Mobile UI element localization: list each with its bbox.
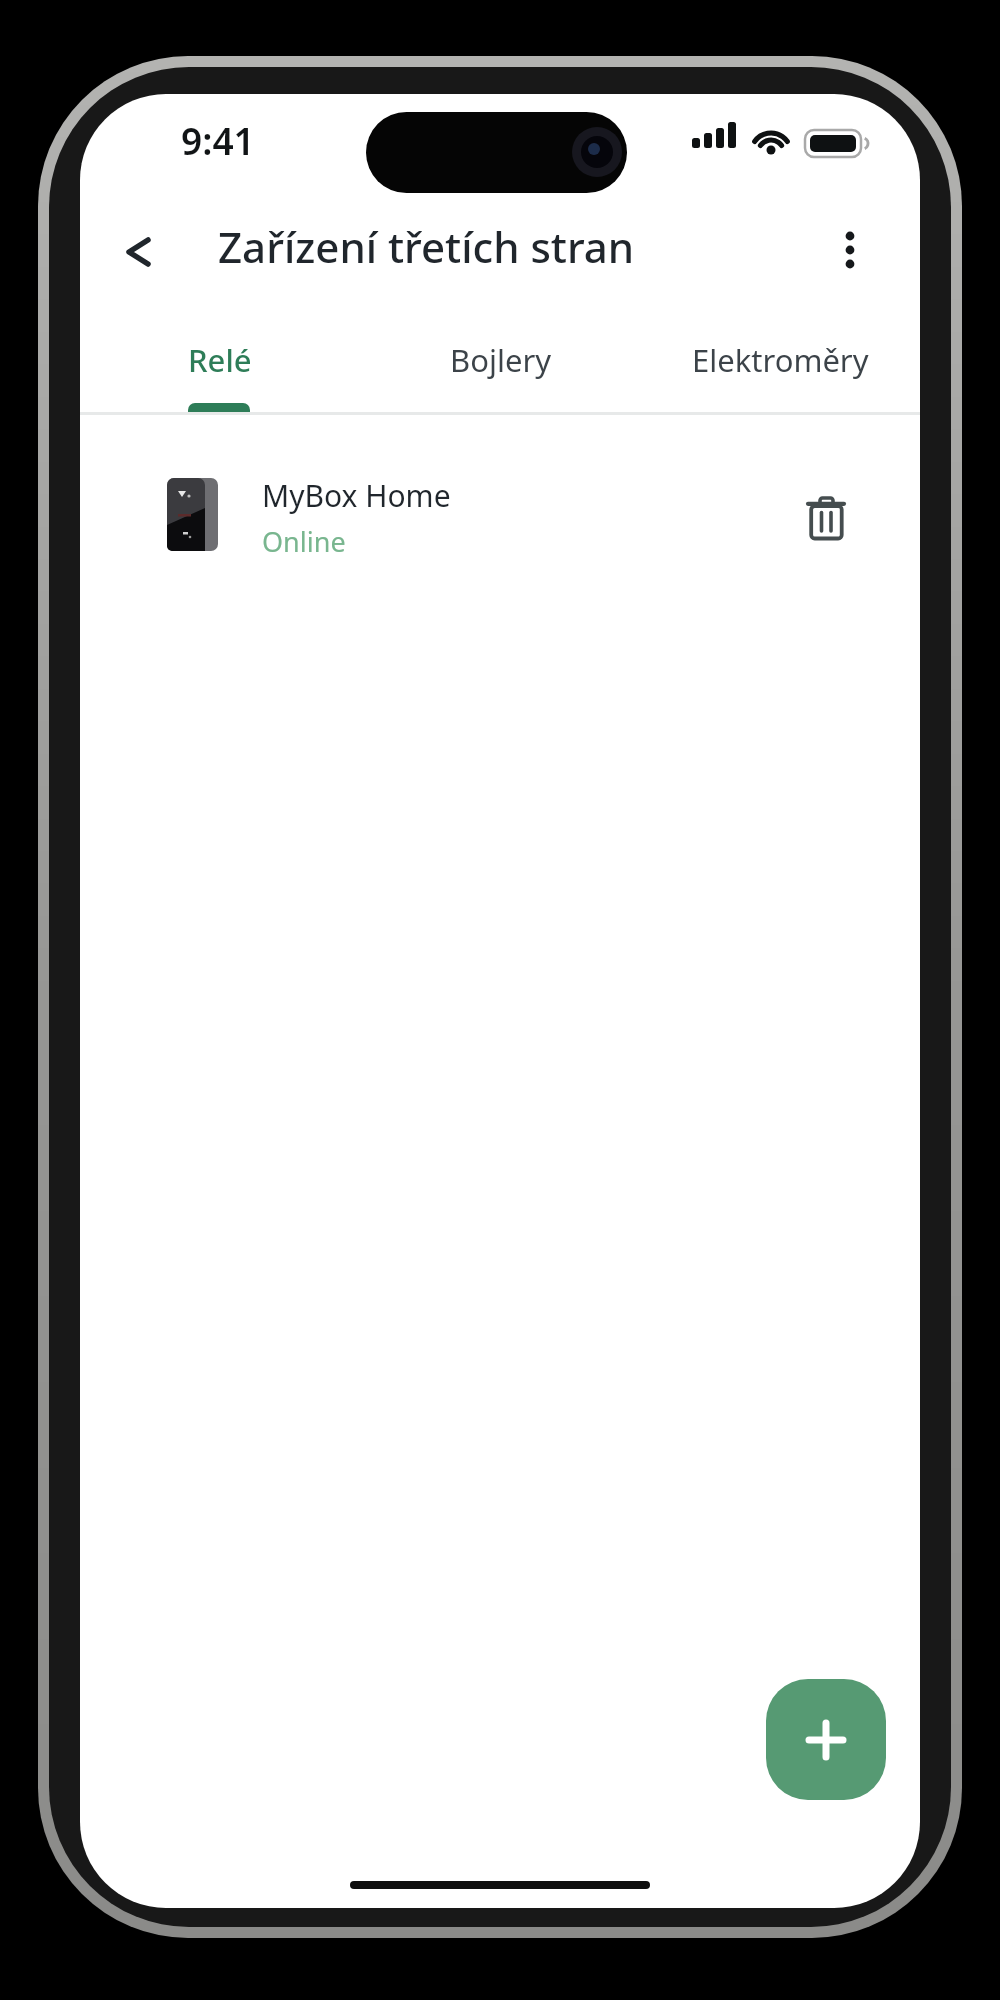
button[interactable]: Elektroměry [640, 327, 920, 393]
staticText: 9:41 [181, 115, 255, 165]
button[interactable] [110, 224, 166, 280]
button[interactable] [794, 486, 858, 550]
staticText: Zařízení třetích stran [218, 218, 635, 275]
button[interactable]: Relé [80, 327, 360, 393]
staticText: Online [262, 523, 346, 560]
button[interactable] [766, 1679, 886, 1800]
staticText: Relé [188, 339, 252, 381]
button[interactable] [822, 222, 878, 278]
staticText: Bojlery [450, 339, 551, 381]
staticText: MyBox Home [262, 475, 451, 516]
button[interactable] [140, 454, 860, 574]
staticText: Elektroměry [692, 339, 869, 381]
button[interactable]: Bojlery [360, 327, 640, 393]
